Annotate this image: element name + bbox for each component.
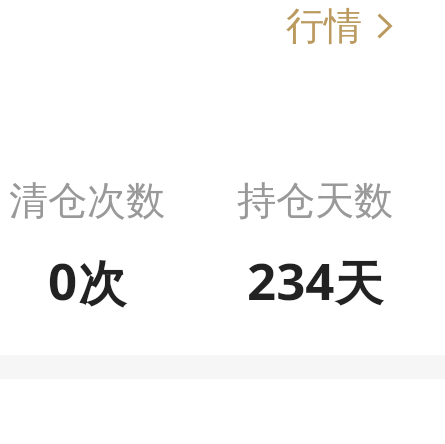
staticText: 次 — [78, 254, 126, 314]
staticText: 持仓天数 — [237, 176, 393, 225]
button[interactable]: 行情 — [278, 0, 436, 62]
staticText: 0 — [48, 245, 78, 314]
staticText: 天 — [335, 254, 383, 314]
other: 行情 — [377, 13, 392, 39]
staticText: 行情 — [286, 2, 362, 50]
staticText: 清仓次数 — [9, 176, 165, 225]
staticText: 234 — [247, 245, 335, 314]
button[interactable]: 清仓次数 — [9, 176, 165, 314]
button[interactable]: 持仓天数 — [237, 176, 393, 314]
